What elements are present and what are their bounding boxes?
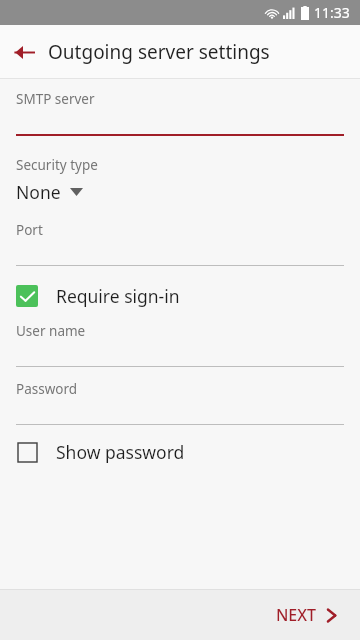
button[interactable]: Require sign-in bbox=[0, 280, 360, 312]
staticText: Show password bbox=[56, 440, 185, 464]
staticText: Outgoing server settings bbox=[48, 39, 270, 65]
staticText: User name bbox=[16, 322, 86, 340]
staticText: SMTP server bbox=[16, 90, 95, 108]
button[interactable]: NEXT bbox=[255, 590, 360, 640]
staticText: Port bbox=[16, 221, 43, 239]
staticText: None bbox=[16, 180, 61, 204]
staticText: 11:33 bbox=[314, 3, 350, 22]
button[interactable]: Show password bbox=[0, 436, 360, 468]
staticText: NEXT bbox=[275, 604, 316, 626]
button[interactable]: Back bbox=[0, 28, 48, 76]
button[interactable]: None bbox=[0, 178, 360, 206]
staticText: Password bbox=[16, 380, 78, 398]
staticText: Require sign-in bbox=[56, 284, 180, 308]
staticText: Security type bbox=[16, 156, 98, 174]
